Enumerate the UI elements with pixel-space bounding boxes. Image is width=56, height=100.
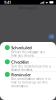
- staticText: Messages: [18, 5, 37, 10]
- staticText: conversation.: [11, 84, 29, 88]
- staticText: time you choose.: [11, 54, 35, 57]
- staticText: Checklist: [11, 59, 29, 65]
- staticText: Reminder: [11, 72, 31, 77]
- staticText: Scheduled: [11, 45, 32, 50]
- staticText: 9:41: [4, 0, 11, 5]
- staticText: ok: [50, 35, 53, 38]
- staticText: Get a notification when it is: [11, 77, 50, 81]
- button[interactable]: Reminder: [0, 70, 56, 85]
- staticText: shared checklist.: [11, 68, 33, 72]
- staticText: time to follow up on this: [11, 81, 47, 84]
- button[interactable]: Checklist: [0, 56, 56, 70]
- staticText: Deliver this message at a: [11, 50, 44, 54]
- staticText: Turn the items below into a: [11, 65, 50, 68]
- button[interactable]: Scheduled: [0, 42, 56, 56]
